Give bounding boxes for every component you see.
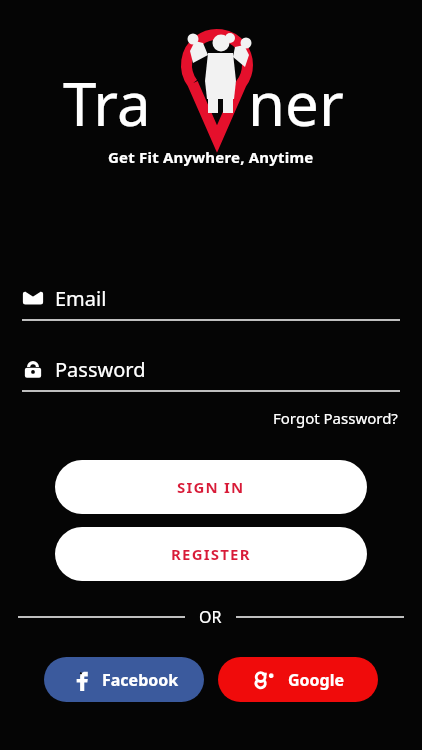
button[interactable]: Facebook bbox=[44, 657, 204, 702]
button[interactable]: REGISTER bbox=[55, 527, 367, 581]
staticText: Tra bbox=[63, 62, 151, 144]
staticText: Password bbox=[55, 356, 146, 383]
staticText: ner bbox=[248, 62, 344, 144]
button[interactable]: Password bbox=[22, 354, 400, 384]
staticText: Google bbox=[288, 669, 345, 691]
staticText: SIGN IN bbox=[177, 477, 245, 497]
other: Password bbox=[22, 358, 44, 380]
button[interactable]: SIGN IN bbox=[55, 460, 367, 514]
staticText: OR bbox=[199, 606, 222, 628]
button[interactable]: Forgot Password? bbox=[271, 406, 400, 430]
staticText: Email bbox=[55, 285, 107, 312]
button[interactable]: Email bbox=[22, 283, 400, 313]
staticText: Facebook bbox=[102, 669, 179, 691]
button[interactable]: Google bbox=[218, 657, 378, 702]
staticText: Forgot Password? bbox=[273, 408, 398, 428]
other: Email bbox=[22, 287, 44, 309]
staticText: REGISTER bbox=[171, 544, 251, 564]
staticText: Get Fit Anywhere, Anytime bbox=[108, 147, 314, 167]
